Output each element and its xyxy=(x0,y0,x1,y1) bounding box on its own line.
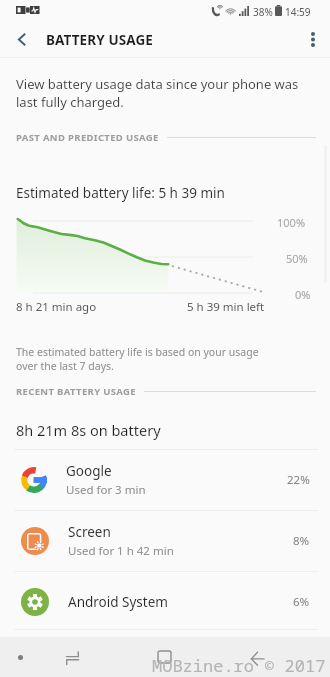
staticText: 8 h 21 min ago xyxy=(16,299,97,315)
staticText: PAST AND PREDICTED USAGE xyxy=(16,131,159,144)
staticText: 14:59 xyxy=(285,5,311,19)
staticText: 100% xyxy=(277,215,306,230)
staticText: 0% xyxy=(295,287,311,302)
button[interactable]: Google xyxy=(0,449,330,510)
staticText: Used for 3 min xyxy=(66,482,146,498)
button[interactable]: Screen xyxy=(0,510,330,571)
staticText: Screen xyxy=(68,523,111,541)
staticText: Google xyxy=(66,462,112,480)
staticText: Used for 1 h 42 min xyxy=(68,543,174,559)
staticText: 5 h 39 min left xyxy=(187,299,265,315)
button[interactable]: Recent apps xyxy=(54,641,90,675)
button[interactable]: Navigate up xyxy=(6,22,38,57)
staticText: View battery usage data since your phone… xyxy=(16,75,299,93)
staticText: 50% xyxy=(286,251,308,266)
staticText: RECENT BATTERY USAGE xyxy=(16,385,136,398)
staticText: The estimated battery life is based on y… xyxy=(16,345,259,359)
staticText: over the last 7 days. xyxy=(16,359,114,373)
staticText: Estimated battery life: 5 h 39 min xyxy=(16,184,225,202)
button[interactable]: Menu xyxy=(2,640,38,674)
button[interactable]: Home xyxy=(146,640,182,674)
staticText: Android System xyxy=(68,593,168,611)
button[interactable]: Back xyxy=(239,641,275,675)
staticText: 8% xyxy=(293,533,310,549)
staticText: 38% xyxy=(253,5,273,19)
staticText: last fully charged. xyxy=(16,93,124,111)
staticText: 22% xyxy=(287,472,310,488)
staticText: 8h 21m 8s on battery xyxy=(16,420,161,440)
staticText: 6% xyxy=(293,594,310,610)
staticText: MOBzine.ro © 2017 xyxy=(152,654,326,677)
button[interactable]: More options xyxy=(296,22,330,57)
button[interactable]: Android System xyxy=(0,571,330,632)
staticText: BATTERY USAGE xyxy=(46,31,153,49)
